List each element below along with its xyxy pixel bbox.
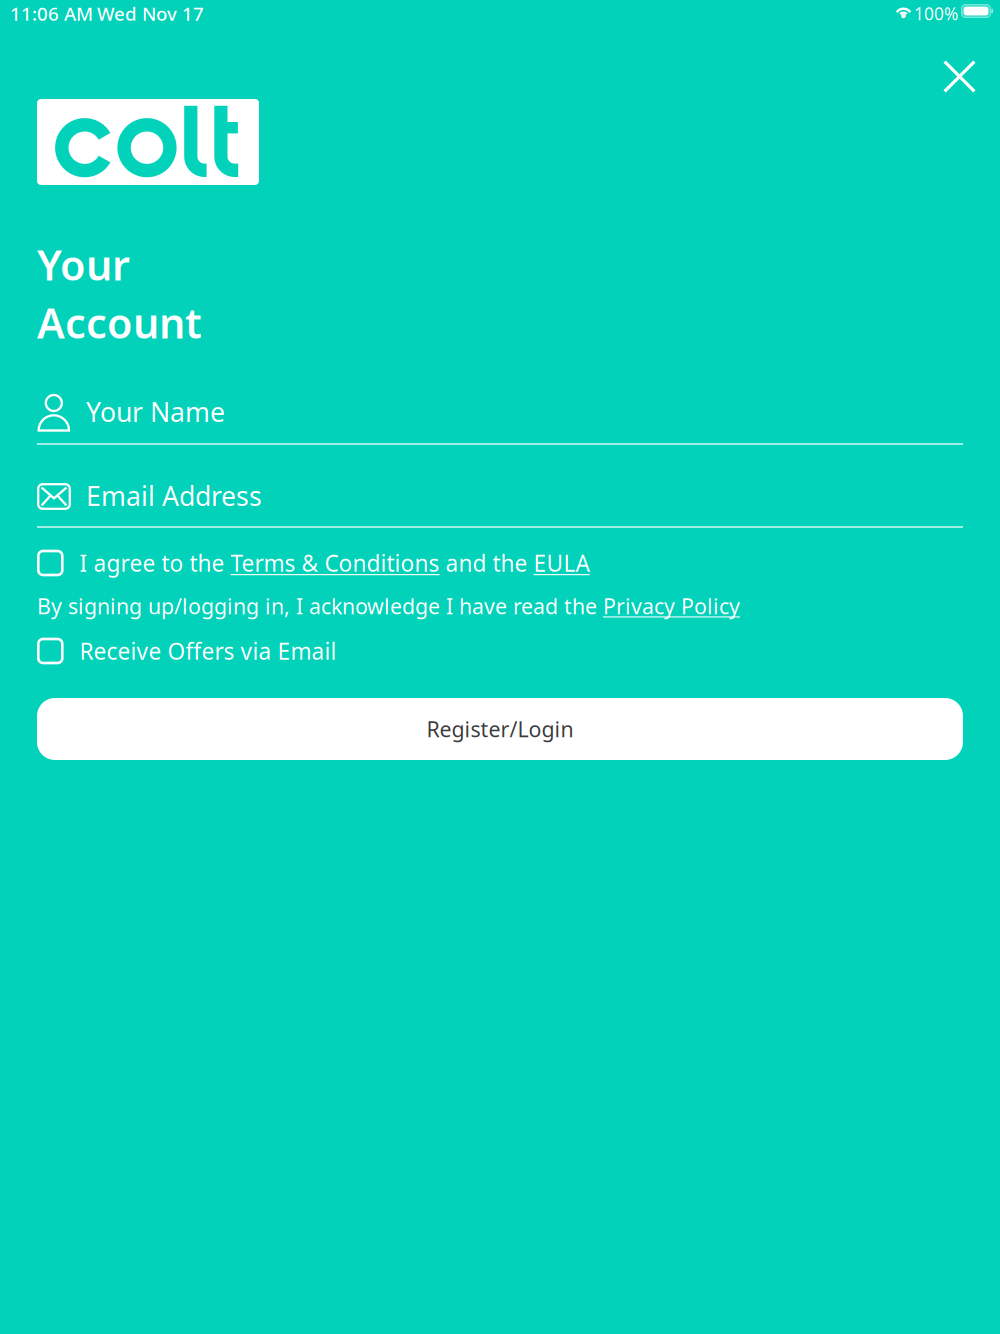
staticText: 100% xyxy=(914,2,958,25)
staticText: Your xyxy=(37,237,130,292)
button[interactable]: Your Name xyxy=(37,391,963,445)
staticText: Register/Login xyxy=(426,715,573,743)
staticText: Receive Offers via Email xyxy=(80,636,337,666)
button[interactable]: Email Address xyxy=(37,470,963,528)
staticText: 11:06 AM xyxy=(10,1,93,26)
staticText: Email Address xyxy=(86,478,262,513)
staticText: Account xyxy=(37,295,202,350)
button[interactable]: Close xyxy=(925,42,994,111)
staticText: I agree to the Terms & Conditions and th… xyxy=(80,548,590,578)
button[interactable]: Receive Offers via Email xyxy=(37,634,963,668)
button[interactable]: I agree to the Terms & Conditions and th… xyxy=(37,546,963,580)
button[interactable]: Register/Login xyxy=(37,698,963,760)
staticText: Your Name xyxy=(86,394,225,429)
staticText: By signing up/logging in, I acknowledge … xyxy=(37,592,740,620)
staticText: Wed Nov 17 xyxy=(97,1,204,26)
button[interactable]: By signing up/logging in, I acknowledge … xyxy=(37,592,963,620)
